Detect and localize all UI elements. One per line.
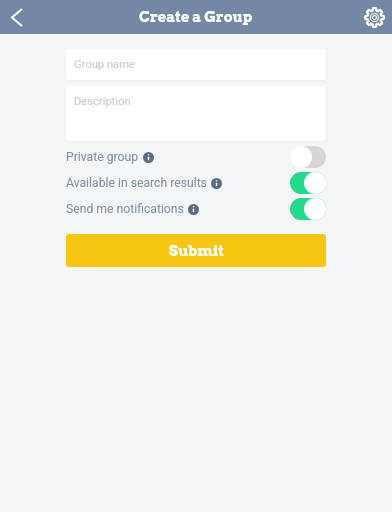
button[interactable]: Available in search results (66, 170, 326, 196)
button[interactable]: Submit (66, 234, 326, 267)
staticText: Description (74, 95, 131, 108)
button[interactable]: Private group (66, 144, 326, 170)
button[interactable]: Toggle on (290, 172, 326, 194)
button[interactable]: Back (0, 0, 34, 34)
staticText: Send me notifications (66, 202, 184, 216)
staticText: Group name (74, 58, 135, 71)
staticText: Create a Group (139, 8, 253, 26)
button[interactable]: Send me notifications (66, 196, 326, 222)
button[interactable]: Toggle on (290, 198, 326, 220)
button[interactable]: Toggle off (290, 146, 326, 168)
button[interactable]: Settings (356, 0, 392, 34)
button[interactable]: Description (66, 86, 326, 141)
staticText: Available in search results (66, 176, 207, 190)
staticText: Private group (66, 150, 139, 164)
staticText: Submit (169, 242, 224, 260)
button[interactable]: Group name (66, 49, 326, 80)
